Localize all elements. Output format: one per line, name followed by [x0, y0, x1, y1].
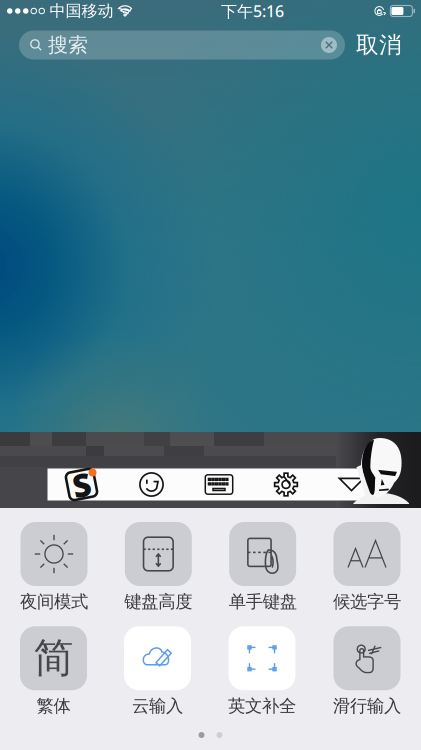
staticText: 下午5:16 — [221, 0, 284, 22]
staticText: 中国移动 — [49, 1, 113, 21]
staticText: 键盘高度 — [124, 591, 192, 612]
staticText: 取消 — [356, 31, 402, 59]
button[interactable]: 候选字号 — [333, 522, 401, 612]
button[interactable]: Settings — [274, 472, 298, 496]
button[interactable]: 夜间模式 — [20, 522, 88, 612]
button[interactable]: Emoji — [139, 472, 164, 497]
staticText: S — [72, 463, 90, 506]
button[interactable]: 单手键盘 — [229, 522, 297, 612]
staticText: 候选字号 — [333, 591, 401, 612]
button[interactable]: 云输入 — [124, 626, 191, 717]
button[interactable]: 英文补全 — [228, 626, 296, 717]
staticText: 简 — [33, 634, 73, 683]
button[interactable]: Sogou input — [64, 468, 98, 500]
button[interactable]: Keyboard — [204, 474, 233, 495]
staticText: 夜间模式 — [20, 591, 88, 612]
staticText: 云输入 — [132, 695, 183, 717]
button[interactable]: 滑行输入 — [333, 626, 401, 717]
button[interactable]: 简 — [20, 626, 87, 717]
button[interactable]: 取消 — [345, 27, 402, 63]
staticText: 搜索 — [48, 33, 88, 57]
button[interactable]: 键盘高度 — [124, 522, 192, 612]
staticText: 英文补全 — [228, 695, 296, 717]
button[interactable]: 搜索 — [19, 30, 345, 59]
staticText: 繁体 — [36, 695, 70, 717]
button[interactable]: Hide keyboard — [338, 477, 364, 491]
staticText: 单手键盘 — [229, 591, 297, 612]
staticText: 滑行输入 — [333, 695, 401, 717]
